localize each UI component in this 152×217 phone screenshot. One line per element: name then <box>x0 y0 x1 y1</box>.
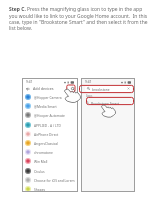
button[interactable]: brookstone <box>85 85 132 92</box>
staticText: Step C. Press the magnifying glass icon … <box>9 6 151 31</box>
staticText: Brookstone Smart <box>91 101 120 105</box>
staticText: Add devices <box>33 86 54 91</box>
button[interactable]: @Media Smart <box>22 101 78 110</box>
staticText: Win Mall <box>34 159 48 163</box>
button[interactable]: AngersClassical <box>22 138 78 147</box>
button[interactable]: chromatone <box>22 147 78 156</box>
staticText: AngersClassical <box>34 141 59 145</box>
button[interactable]: AirPhone Direct <box>22 129 78 138</box>
staticText: chromatone <box>34 150 53 154</box>
other: Clear <box>127 87 130 90</box>
staticText: @Hopper Camera <box>34 95 62 99</box>
button[interactable]: Brookstone Smart <box>81 99 135 106</box>
button[interactable]: APPLIED - A / LTD <box>22 120 78 129</box>
button[interactable]: @Hopper Camera <box>22 92 78 101</box>
button[interactable]: Choose for iOS and Lorem <box>22 175 78 184</box>
staticText: Choose for iOS and Lorem <box>34 178 75 182</box>
staticText: @Media Smart <box>34 104 57 108</box>
staticText: APPLIED - A / LTD <box>34 123 61 127</box>
staticText: AirPhone Direct <box>34 132 59 136</box>
button[interactable]: Shapes <box>22 184 78 193</box>
staticText: brookstone <box>92 87 110 91</box>
button[interactable]: Oculus <box>22 166 78 175</box>
button[interactable]: @Hooper Automate <box>22 110 78 119</box>
staticText: 9:41 <box>26 80 33 84</box>
staticText: 9:41 <box>85 80 92 84</box>
staticText: Apps <box>86 94 93 98</box>
staticText: Oculus <box>34 169 45 173</box>
button[interactable]: Search <box>70 86 75 91</box>
staticText: Shapes <box>34 187 46 191</box>
button[interactable]: Win Mall <box>22 156 78 165</box>
staticText: @Hooper Automate <box>34 113 65 117</box>
